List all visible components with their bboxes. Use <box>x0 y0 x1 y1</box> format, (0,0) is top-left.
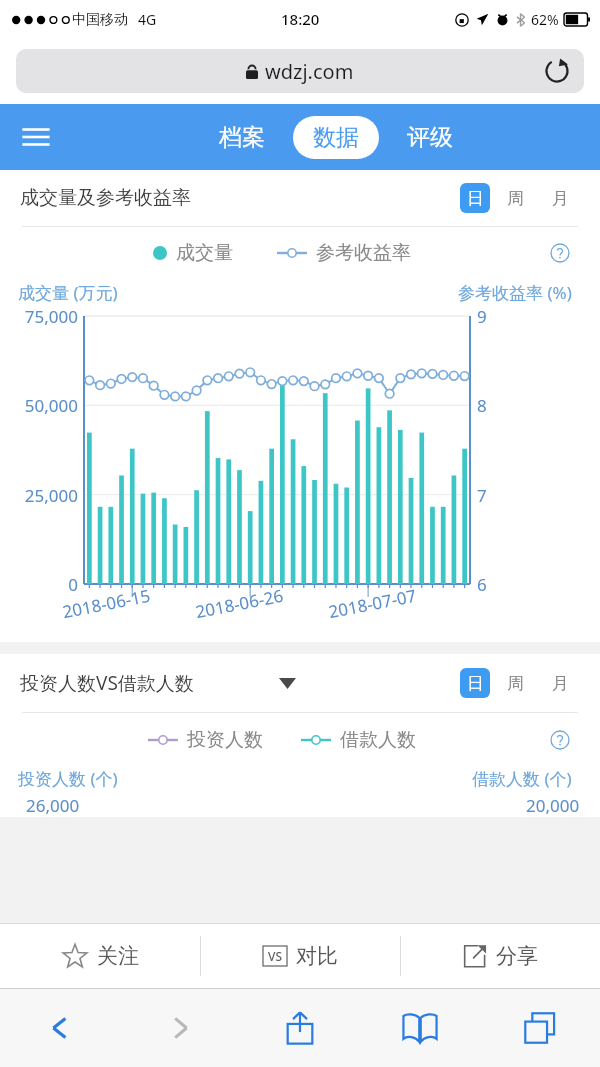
staticText: 成交量 <box>176 241 233 265</box>
staticText: 7 <box>477 484 487 507</box>
staticText: 关注 <box>97 943 139 969</box>
button[interactable]: 周 <box>490 183 540 213</box>
staticText: 20,000 <box>526 794 580 817</box>
staticText: 投资人数 (个) <box>18 767 118 790</box>
button[interactable]: 数据 <box>313 123 359 152</box>
staticText: 投资人数 <box>187 728 263 752</box>
button[interactable]: 评级 <box>407 123 453 152</box>
button[interactable]: 周 <box>490 668 540 698</box>
button[interactable]: wdzj.com <box>16 49 584 93</box>
staticText: 月 <box>552 673 569 694</box>
staticText: 62% <box>531 10 559 29</box>
button[interactable]: 月 <box>540 183 580 213</box>
button[interactable]: Share <box>240 989 360 1067</box>
staticText: 25,000 <box>0 484 78 507</box>
button[interactable]: 关注 <box>0 924 200 988</box>
button[interactable]: Reload <box>544 58 570 84</box>
staticText: 日 <box>467 188 484 209</box>
button[interactable]: Tabs <box>480 989 600 1067</box>
staticText: 参考收益率 <box>316 241 411 265</box>
staticText: 成交量 (万元) <box>18 281 118 304</box>
staticText: 周 <box>507 673 524 694</box>
button[interactable]: Help <box>550 243 570 263</box>
staticText: 对比 <box>296 943 338 969</box>
button[interactable]: 日 <box>460 183 490 213</box>
staticText: 周 <box>507 188 524 209</box>
staticText: 借款人数 (个) <box>472 767 572 790</box>
staticText: 18:20 <box>281 9 320 29</box>
staticText: 0 <box>0 573 78 596</box>
staticText: 评级 <box>407 123 453 152</box>
staticText: 借款人数 <box>340 728 416 752</box>
staticText: 档案 <box>219 123 265 152</box>
staticText: 分享 <box>496 943 538 969</box>
button[interactable]: 日 <box>460 668 490 698</box>
staticText: 9 <box>477 305 487 328</box>
button[interactable]: 档案 <box>219 123 265 152</box>
staticText: 投资人数VS借款人数 <box>20 670 194 696</box>
staticText: 2018-06-26 <box>194 584 285 623</box>
staticText: 中国移动 <box>72 11 128 29</box>
staticText: 数据 <box>313 123 359 152</box>
staticText: 2018-06-15 <box>61 584 152 623</box>
button[interactable]: VS <box>201 924 400 988</box>
button[interactable]: Bookmarks <box>360 989 480 1067</box>
button[interactable]: Expand <box>274 670 300 696</box>
button[interactable]: Help <box>550 730 570 750</box>
staticText: 成交量及参考收益率 <box>20 186 191 210</box>
button[interactable]: Back <box>0 989 120 1067</box>
staticText: 月 <box>552 188 569 209</box>
staticText: 26,000 <box>26 794 80 817</box>
button[interactable]: Forward <box>120 989 240 1067</box>
staticText: 75,000 <box>0 305 78 328</box>
staticText: 日 <box>467 673 484 694</box>
staticText: 50,000 <box>0 394 78 417</box>
staticText: 4G <box>138 10 157 29</box>
staticText: wdzj.com <box>265 58 354 85</box>
button[interactable]: 分享 <box>401 924 600 988</box>
staticText: 8 <box>477 394 487 417</box>
staticText: VS <box>268 948 282 964</box>
button[interactable]: Menu <box>14 115 58 159</box>
staticText: 6 <box>477 573 487 596</box>
staticText: 2018-07-07 <box>327 584 418 623</box>
button[interactable]: 月 <box>540 668 580 698</box>
staticText: 参考收益率 (%) <box>458 281 572 304</box>
